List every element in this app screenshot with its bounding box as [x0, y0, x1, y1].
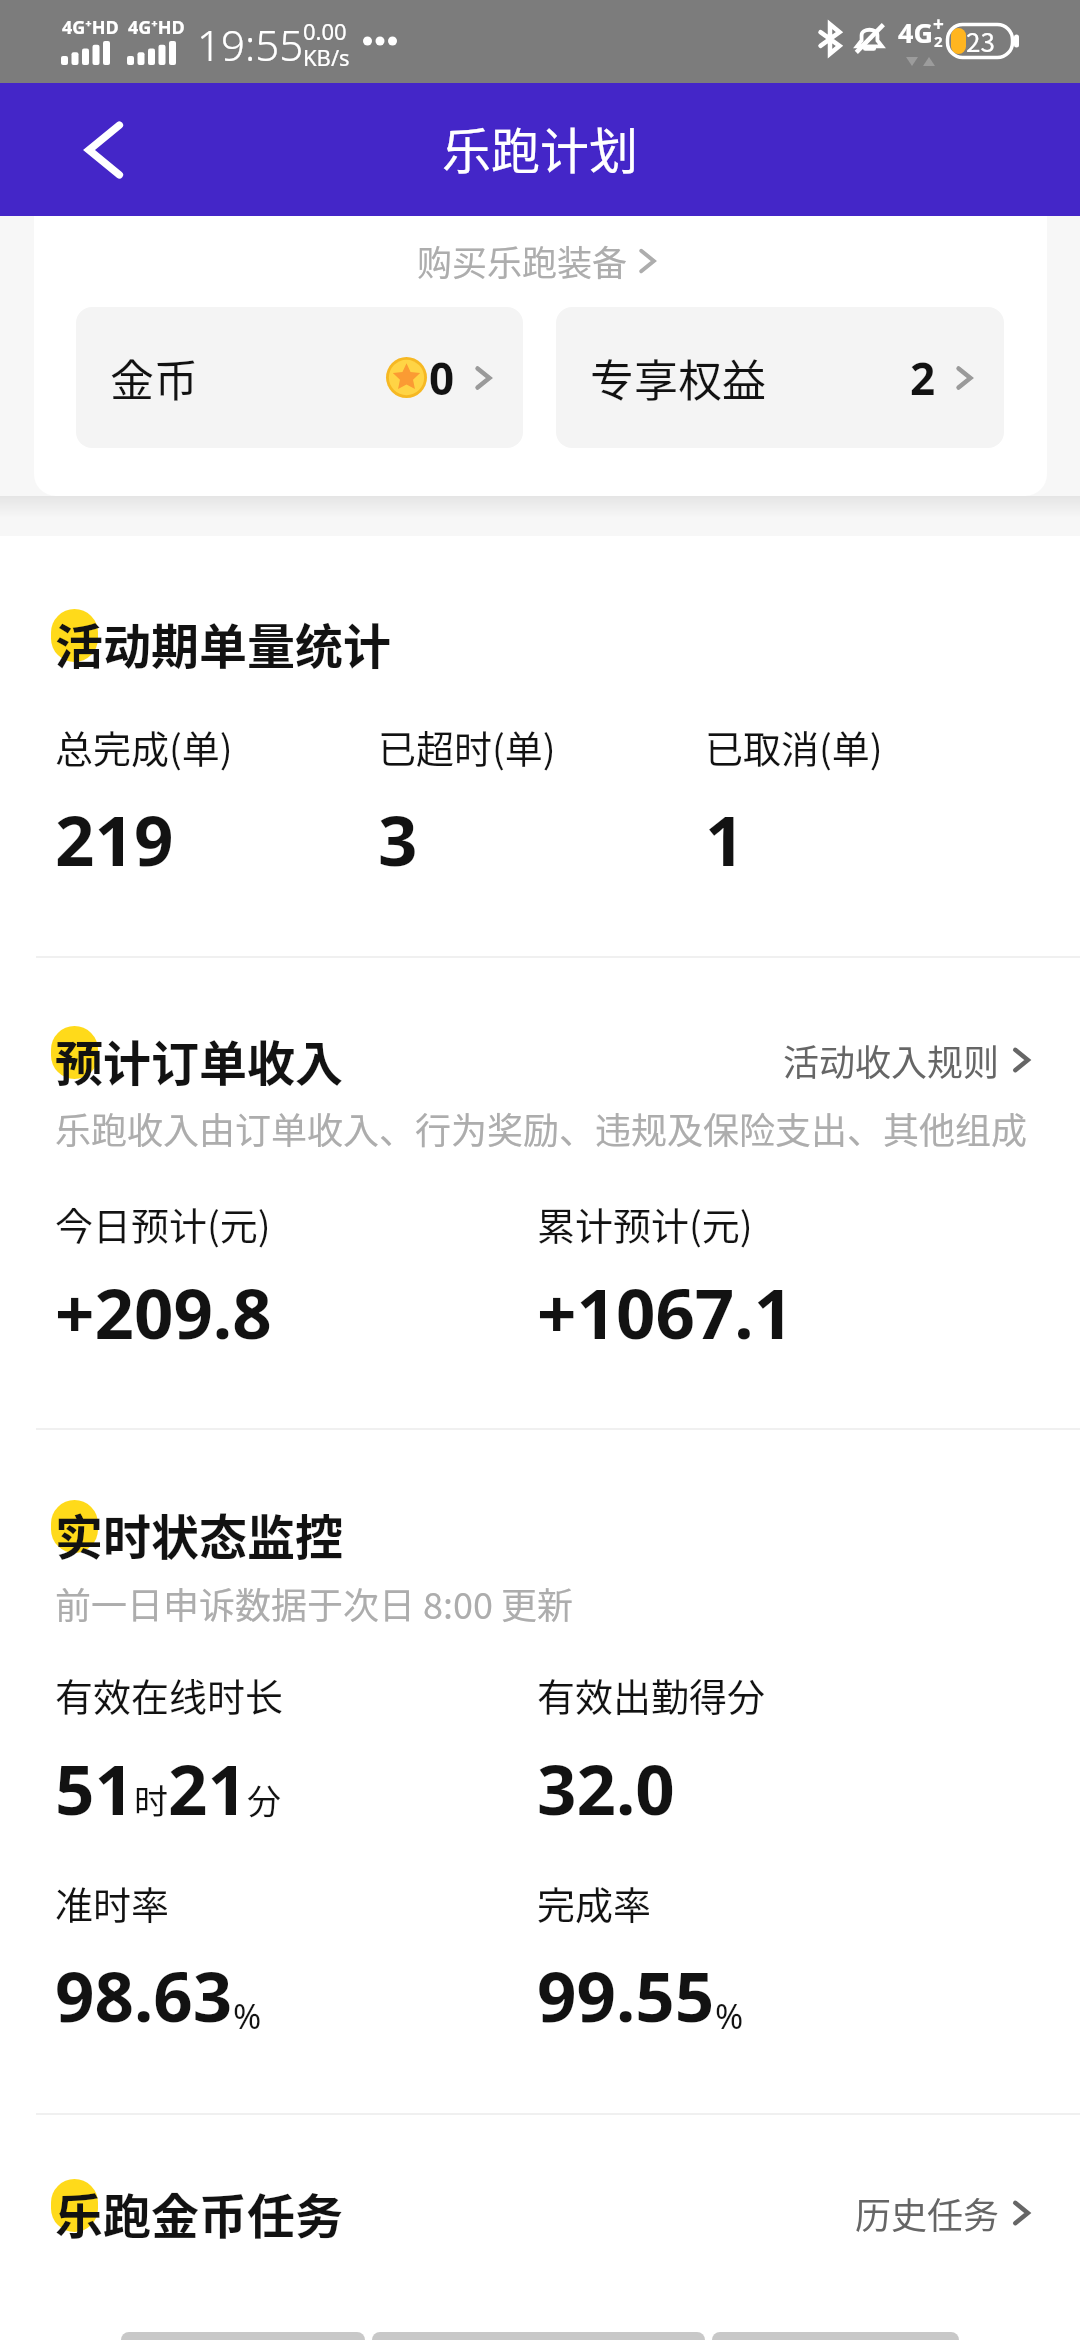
staticText: 51 [55, 1741, 134, 1835]
staticText: 98.63 [55, 1948, 233, 2042]
staticText: 购买乐跑装备 [417, 235, 628, 286]
staticText: 99.55 [537, 1948, 715, 2042]
staticText: 21 [168, 1741, 247, 1835]
staticText: % [233, 1993, 262, 2039]
staticText: 历史任务 [855, 2187, 1000, 2239]
staticText: 4G⁺HD [128, 15, 185, 40]
staticText: 乐跑金币任务 [55, 2178, 344, 2248]
staticText: 累计预计(元) [537, 1196, 753, 1251]
staticText: 实时状态监控 [55, 1499, 344, 1569]
staticText: 4G [898, 14, 933, 51]
staticText: 专享权益 [590, 346, 766, 410]
staticText: 219 [55, 792, 174, 886]
staticText: 4G⁺HD [62, 15, 119, 40]
staticText: 完成率 [537, 1875, 652, 1930]
staticText: 乐跑计划 [442, 112, 639, 183]
staticText: 活动期单量统计 [55, 608, 392, 678]
staticText: 32.0 [537, 1741, 675, 1835]
staticText: 前一日申诉数据于次日 8:00 更新 [55, 1577, 574, 1629]
staticText: 今日预计(元) [55, 1196, 271, 1251]
staticText: + [933, 11, 944, 37]
button[interactable]: 历史任务 [855, 2187, 1038, 2239]
staticText: +209.8 [55, 1265, 272, 1359]
staticText: % [715, 1993, 744, 2039]
staticText: 23 [966, 22, 995, 60]
button[interactable]: 金币 [76, 307, 523, 448]
staticText: 总完成(单) [55, 719, 233, 774]
button[interactable]: 专享权益 [556, 307, 1004, 448]
button[interactable]: 活动收入规则 [783, 1034, 1038, 1086]
staticText: 乐跑收入由订单收入、行为奖励、违规及保险支出、其他组成 [55, 1102, 1028, 1154]
staticText: 有效出勤得分 [537, 1667, 766, 1722]
staticText: 2 [934, 31, 943, 51]
staticText: 已取消(单) [705, 719, 883, 774]
staticText: +1067.1 [537, 1265, 794, 1359]
staticText: KB/s [303, 42, 350, 72]
staticText: 已超时(单) [378, 719, 556, 774]
button[interactable]: 购买乐跑装备 [417, 235, 664, 286]
staticText: 活动收入规则 [783, 1034, 1000, 1086]
staticText: 时 [134, 1775, 168, 1824]
button[interactable]: Back [62, 110, 142, 190]
staticText: 2 [910, 348, 936, 408]
staticText: 预计订单收入 [55, 1025, 344, 1095]
staticText: 19:55 [197, 16, 304, 73]
staticText: 有效在线时长 [55, 1667, 284, 1722]
staticText: 1 [705, 792, 745, 886]
staticText: 0.00 [303, 16, 347, 46]
staticText: 金币 [110, 346, 198, 410]
staticText: 3 [378, 792, 418, 886]
staticText: 分 [247, 1775, 281, 1824]
staticText: 0 [429, 348, 455, 408]
staticText: 准时率 [55, 1875, 170, 1930]
